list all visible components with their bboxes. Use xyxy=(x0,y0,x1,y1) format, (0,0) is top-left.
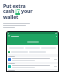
button[interactable] xyxy=(7,57,58,62)
staticText: Put extra cash in your wallet xyxy=(3,2,33,21)
button[interactable] xyxy=(8,51,10,53)
button[interactable]: Menu xyxy=(7,34,58,38)
other: Menu xyxy=(8,35,10,37)
button[interactable] xyxy=(7,64,58,69)
